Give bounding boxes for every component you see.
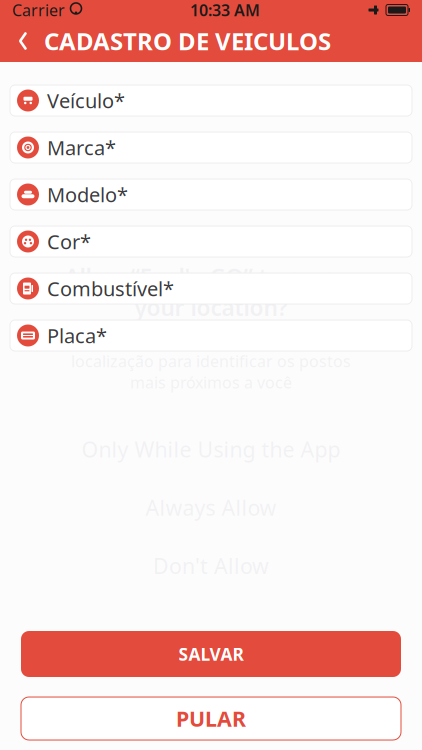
button[interactable]: Back [12,26,34,56]
staticText: SALVAR [178,642,243,665]
staticText: Always Allow [145,493,276,522]
staticText: Marca* [47,134,116,161]
staticText: Combustível* [47,275,174,302]
staticText: 10:33 AM [190,0,260,21]
staticText: localização para identificar os postos [71,350,351,372]
button[interactable]: SALVAR [21,631,401,677]
button[interactable]: Placa* [10,320,412,351]
button[interactable]: PULAR [21,697,401,740]
staticText: mais próximos a você [130,372,292,393]
staticText: Don't Allow [153,552,269,580]
staticText: Only While Using the App [81,435,340,463]
staticText: Placa* [47,322,107,349]
staticText: Modelo* [47,181,128,208]
button[interactable]: Marca* [10,132,412,163]
button[interactable]: Veículo* [10,85,412,116]
button[interactable]: Cor* [10,226,412,257]
button[interactable]: Modelo* [10,179,412,210]
button[interactable]: Combustível* [10,273,412,304]
staticText: CADASTRO DE VEICULOS [44,25,331,57]
staticText: Esse aplicativo precisa acessar a sua [74,329,348,350]
staticText: your location? [134,292,287,322]
staticText: Carrier [12,0,65,21]
staticText: PULAR [176,704,246,733]
staticText: Allow “Fuel'n GO” to access [64,262,357,292]
staticText: Cor* [47,228,91,255]
staticText: Veículo* [47,87,125,114]
